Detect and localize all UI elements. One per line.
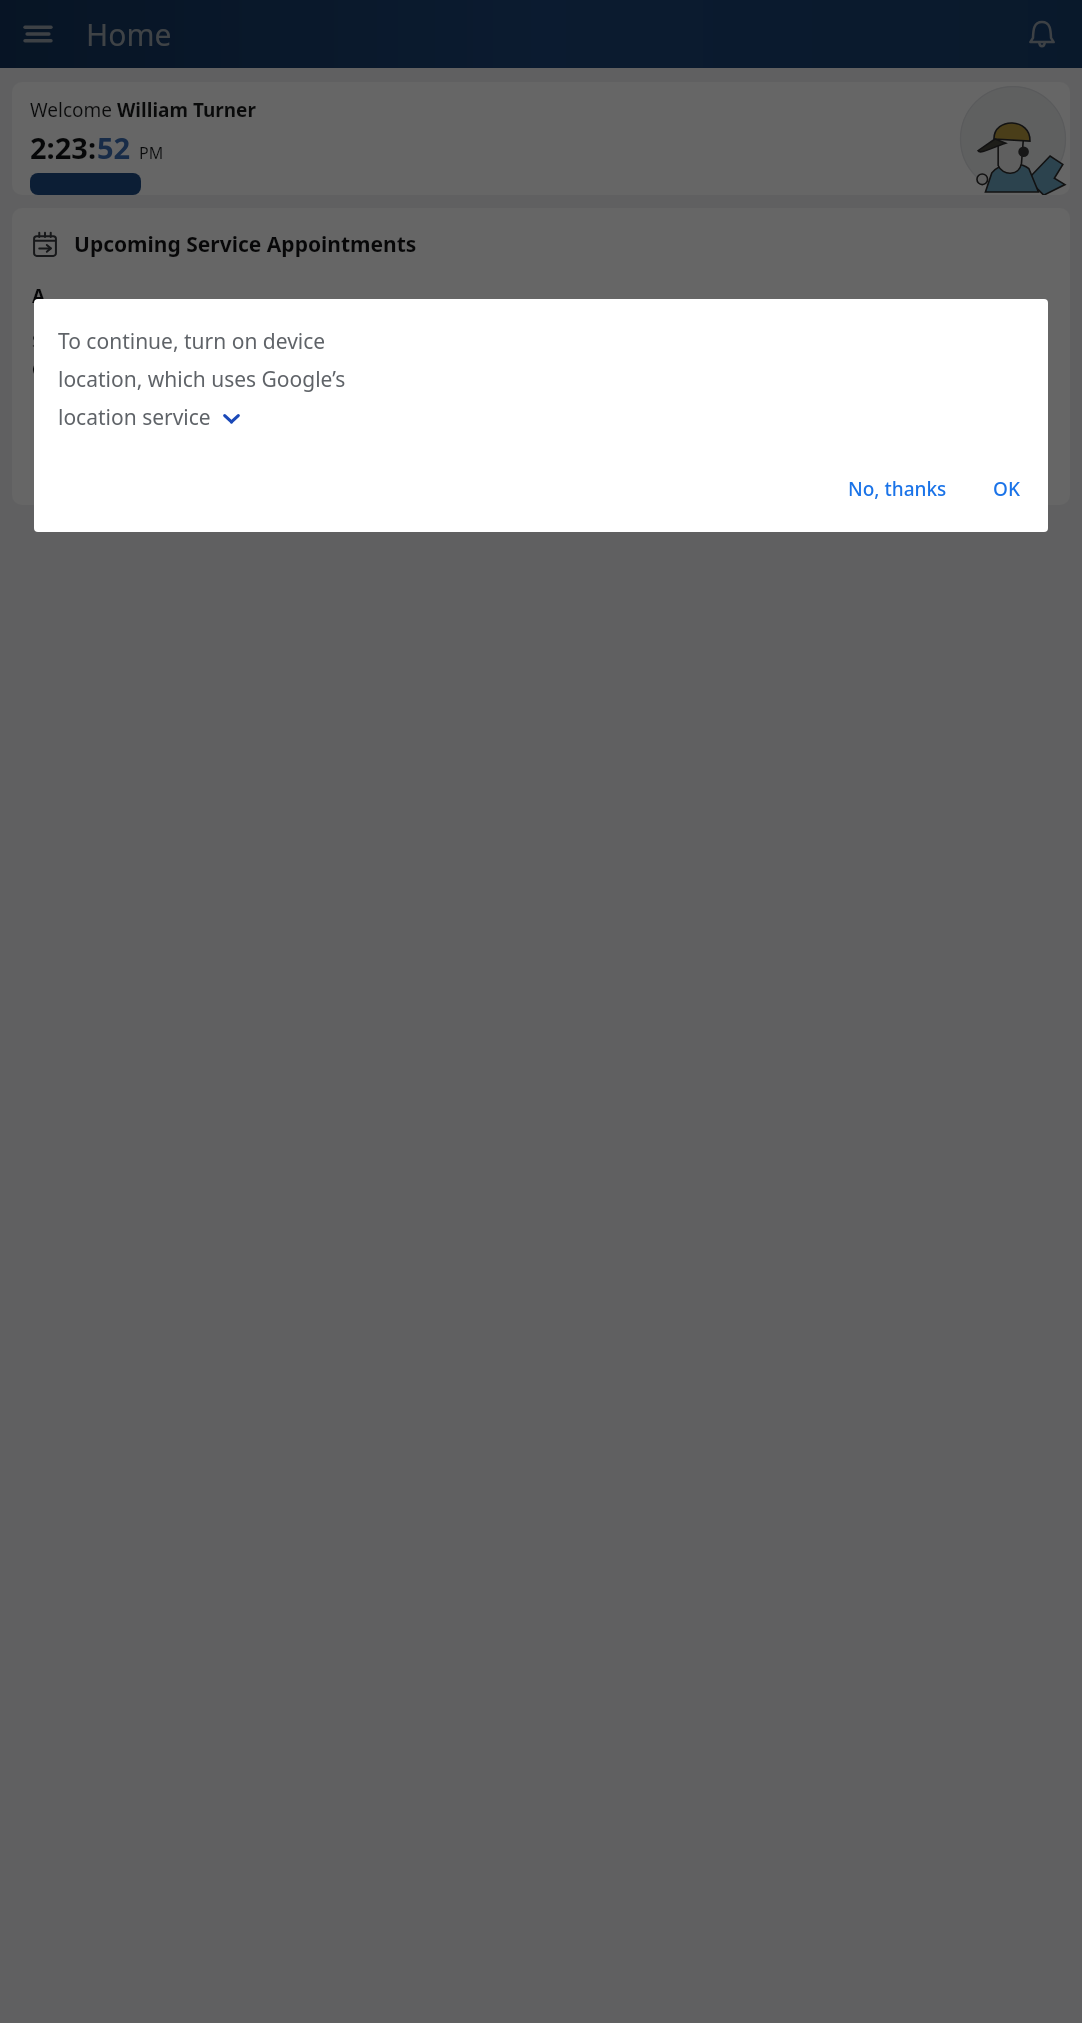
button[interactable]: Check-in — [30, 173, 141, 195]
staticText: location, which uses Google’s — [58, 365, 346, 394]
button[interactable]: OK — [981, 466, 1032, 512]
staticText: PM — [139, 142, 164, 164]
staticText: 2:23: — [30, 128, 97, 167]
button[interactable]: Expand location details — [220, 407, 242, 429]
button[interactable]: No, thanks — [836, 466, 959, 512]
staticText: OK — [993, 476, 1020, 502]
button[interactable]: Notifications — [1016, 8, 1068, 60]
staticText: C — [32, 358, 43, 381]
staticText: Upcoming Service Appointments — [74, 230, 417, 259]
staticText: 52 — [97, 128, 131, 167]
staticText: S — [32, 329, 42, 352]
staticText: location service — [58, 403, 211, 432]
staticText: Home — [86, 14, 172, 55]
staticText: To continue, turn on device — [58, 327, 326, 356]
staticText: No, thanks — [848, 476, 947, 502]
staticText: William Turner — [117, 97, 256, 123]
staticText: A — [32, 283, 46, 309]
button[interactable]: Open navigation menu — [14, 10, 62, 58]
staticText: Welcome — [30, 97, 117, 123]
